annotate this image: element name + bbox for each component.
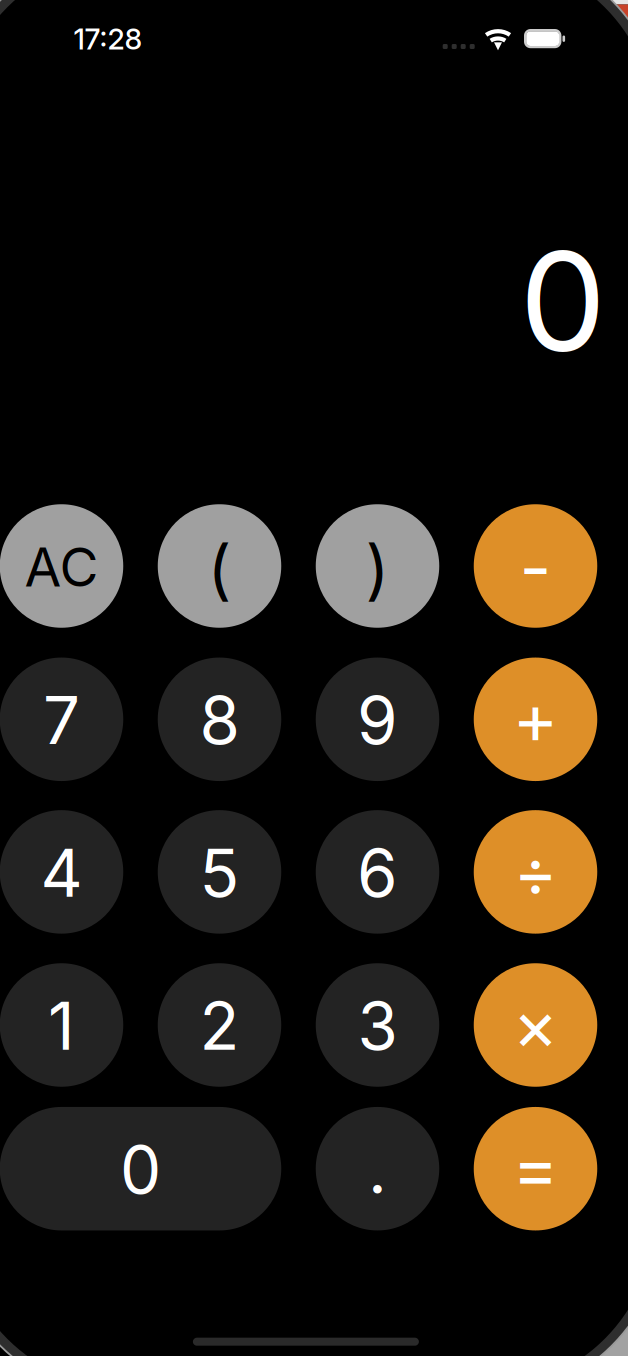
staticText: 5 (199, 833, 239, 912)
button[interactable]: ÷ (474, 810, 597, 934)
staticText: 7 (43, 681, 80, 760)
button[interactable]: 4 (0, 810, 123, 934)
button[interactable]: + (474, 657, 597, 781)
staticText: AC (24, 535, 98, 599)
staticText: - (519, 526, 551, 610)
button[interactable]: 7 (0, 657, 123, 781)
staticText: ( (207, 529, 231, 608)
staticText: 1 (48, 986, 75, 1065)
button[interactable]: 8 (158, 657, 281, 781)
staticText: 8 (199, 681, 239, 760)
staticText: ÷ (513, 832, 557, 912)
staticText: . (368, 1130, 387, 1209)
button[interactable]: . (316, 1107, 439, 1230)
button[interactable]: × (474, 963, 597, 1087)
button[interactable]: 6 (316, 810, 439, 934)
button[interactable]: - (474, 504, 597, 628)
staticText: 6 (357, 833, 398, 912)
button[interactable]: 5 (158, 810, 281, 934)
button[interactable]: AC (0, 504, 123, 628)
button[interactable]: 1 (0, 963, 123, 1087)
button[interactable]: 2 (158, 963, 281, 1087)
button[interactable]: = (474, 1107, 597, 1230)
staticText: 17:28 (74, 22, 143, 56)
button[interactable]: 3 (316, 963, 439, 1087)
staticText: 0 (120, 1130, 161, 1209)
staticText: 9 (357, 681, 398, 760)
staticText: ) (365, 529, 389, 608)
button[interactable]: 9 (316, 657, 439, 781)
staticText: 3 (357, 986, 397, 1065)
staticText: + (512, 676, 558, 760)
staticText: × (512, 983, 558, 1067)
staticText: 0 (519, 218, 606, 384)
button[interactable]: ) (316, 504, 439, 628)
staticText: = (512, 1126, 558, 1210)
staticText: 2 (199, 986, 239, 1065)
button[interactable]: ( (158, 504, 281, 628)
staticText: 4 (40, 833, 82, 912)
button[interactable]: 0 (0, 1107, 281, 1230)
